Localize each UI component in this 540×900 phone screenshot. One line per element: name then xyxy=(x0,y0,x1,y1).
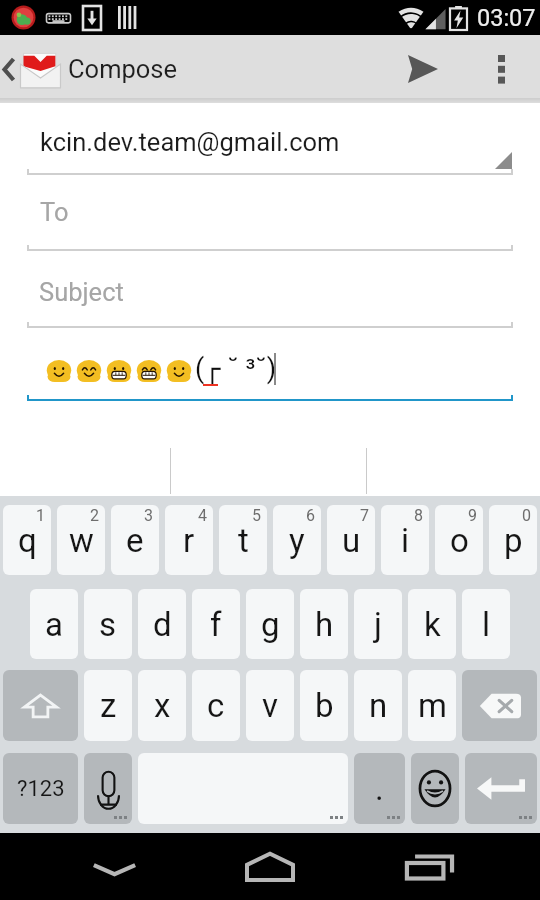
staticText: 7 xyxy=(360,506,369,525)
staticText: 2 xyxy=(90,506,99,525)
staticText: 4 xyxy=(198,506,207,525)
staticText: n xyxy=(369,686,388,725)
staticText: 0 xyxy=(522,506,531,525)
button[interactable] xyxy=(27,321,513,328)
button[interactable]: x xyxy=(138,670,186,741)
staticText: r xyxy=(183,521,195,560)
staticText: . xyxy=(375,769,384,808)
staticText: a xyxy=(45,605,63,644)
button[interactable]: h xyxy=(300,589,348,659)
staticText: (┌ ˘ ³˘) xyxy=(195,353,277,385)
button[interactable]: Voice input xyxy=(84,753,132,824)
staticText: b xyxy=(315,686,334,725)
button[interactable]: b xyxy=(300,670,348,741)
button[interactable]: Shift xyxy=(3,670,78,741)
staticText: v xyxy=(262,686,278,725)
staticText: l xyxy=(482,605,491,644)
button[interactable]: Enter xyxy=(465,753,537,824)
button[interactable]: Compose xyxy=(0,35,178,103)
staticText: kcin.dev.team@gmail.com xyxy=(40,127,340,157)
staticText: j xyxy=(374,605,382,644)
staticText: i xyxy=(401,521,410,560)
button[interactable]: q xyxy=(3,505,51,575)
staticText: d xyxy=(153,605,172,644)
button[interactable]: r xyxy=(165,505,213,575)
button[interactable]: Backspace xyxy=(462,670,537,741)
button[interactable]: l xyxy=(462,589,510,659)
staticText: f xyxy=(210,605,222,644)
staticText: 03:07 xyxy=(477,4,536,32)
button[interactable]: Emoji xyxy=(411,753,459,824)
button[interactable]: Space xyxy=(138,753,348,824)
staticText: 3 xyxy=(144,506,153,525)
staticText: 6 xyxy=(306,506,315,525)
staticText: 9 xyxy=(468,506,477,525)
staticText: z xyxy=(100,686,117,725)
staticText: ?123 xyxy=(17,776,65,802)
staticText: Subject xyxy=(39,277,124,307)
staticText: t xyxy=(238,521,249,560)
button[interactable]: g xyxy=(246,589,294,659)
button[interactable]: . xyxy=(354,753,405,824)
button[interactable]: d xyxy=(138,589,186,659)
button[interactable]: w xyxy=(57,505,105,575)
button[interactable]: t xyxy=(219,505,267,575)
staticText: g xyxy=(261,605,280,644)
button[interactable]: e xyxy=(111,505,159,575)
staticText: c xyxy=(207,686,225,725)
button[interactable]: Recents xyxy=(370,833,484,900)
button[interactable]: Hide keyboard xyxy=(57,833,171,900)
staticText: 8 xyxy=(414,506,423,525)
staticText: To xyxy=(40,197,69,227)
staticText: e xyxy=(126,521,144,560)
button[interactable]: f xyxy=(192,589,240,659)
button[interactable]: p xyxy=(489,505,537,575)
button[interactable]: n xyxy=(354,670,402,741)
staticText: 5 xyxy=(252,506,261,525)
button[interactable]: Home xyxy=(213,833,327,900)
button[interactable] xyxy=(27,244,513,251)
staticText: w xyxy=(69,521,94,560)
staticText: 1 xyxy=(36,506,45,525)
button[interactable]: a xyxy=(30,589,78,659)
button[interactable]: Send xyxy=(399,45,447,93)
button[interactable]: s xyxy=(84,589,132,659)
staticText: k xyxy=(424,605,441,644)
staticText: s xyxy=(99,605,117,644)
staticText: o xyxy=(450,521,469,560)
button[interactable]: ?123 xyxy=(3,753,78,824)
button[interactable]: c xyxy=(192,670,240,741)
button[interactable]: u xyxy=(327,505,375,575)
button[interactable]: o xyxy=(435,505,483,575)
button[interactable] xyxy=(27,168,513,175)
button[interactable]: k xyxy=(408,589,456,659)
staticText: p xyxy=(504,521,523,560)
staticText: y xyxy=(289,521,305,560)
button[interactable]: More options xyxy=(477,45,525,93)
button[interactable]: m xyxy=(408,670,456,741)
staticText: u xyxy=(342,521,361,560)
button[interactable]: v xyxy=(246,670,294,741)
staticText: q xyxy=(18,521,37,560)
staticText: Compose xyxy=(68,54,178,84)
staticText: m xyxy=(418,686,447,725)
button[interactable]: j xyxy=(354,589,402,659)
button[interactable]: i xyxy=(381,505,429,575)
staticText: x xyxy=(154,686,171,725)
button[interactable]: z xyxy=(84,670,132,741)
staticText: h xyxy=(315,605,334,644)
button[interactable]: y xyxy=(273,505,321,575)
